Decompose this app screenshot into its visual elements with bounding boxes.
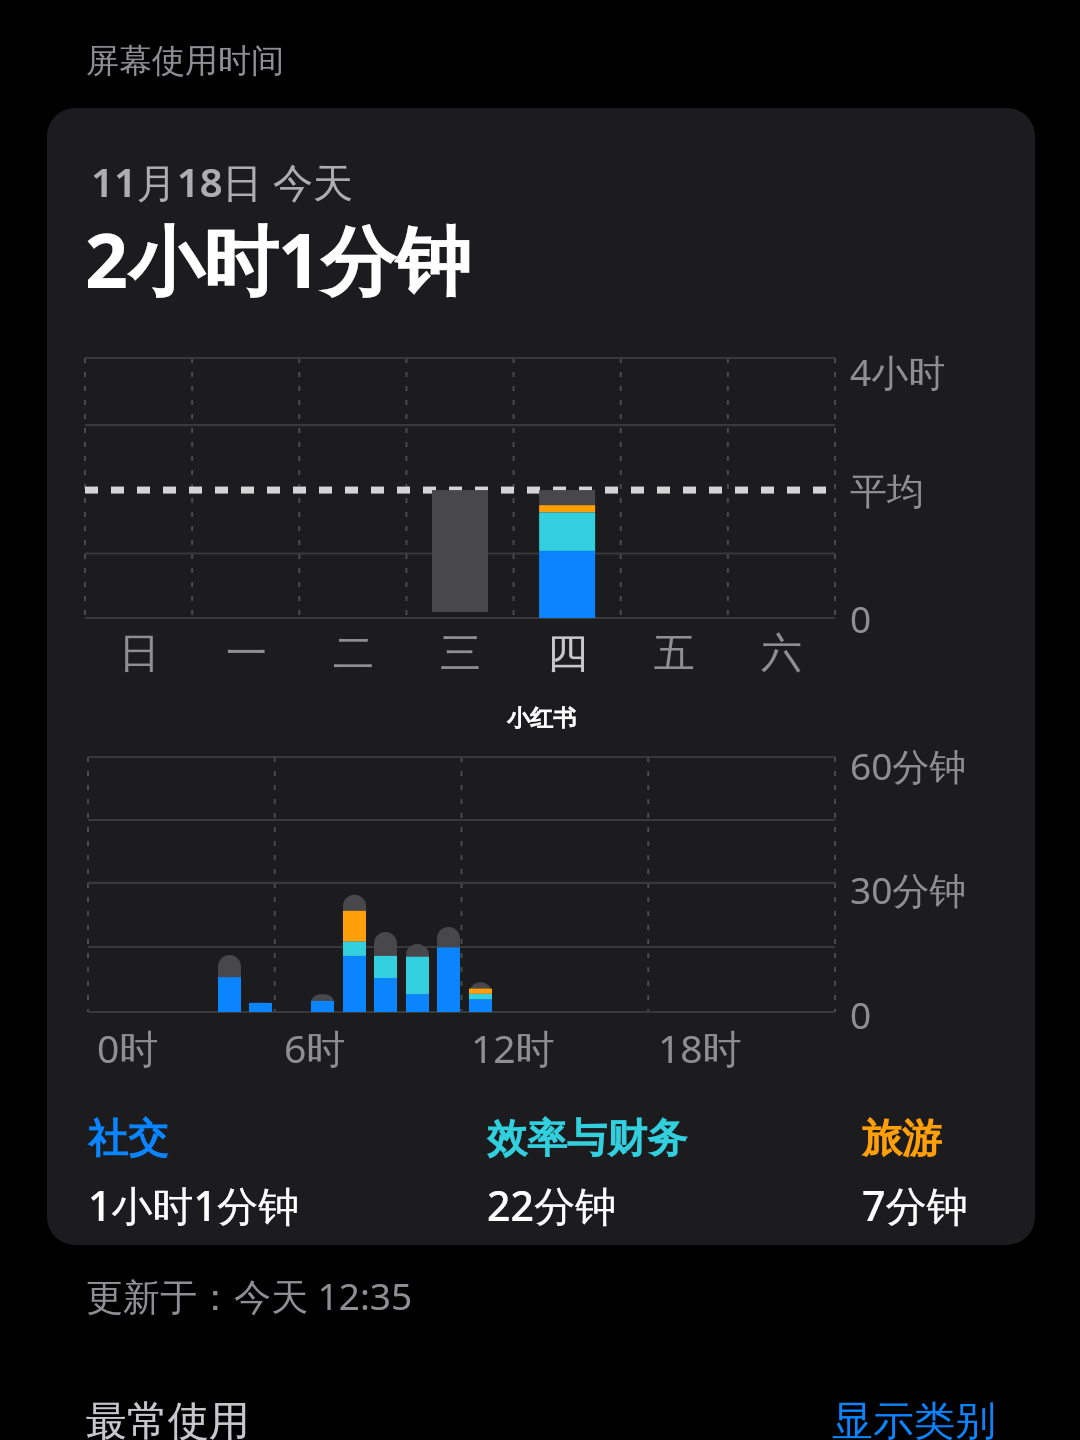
staticText: 屏幕使用时间 [86, 40, 284, 82]
staticText: 三 [440, 628, 481, 680]
button[interactable]: 显示类别 [832, 1396, 996, 1440]
staticText: 社交 [88, 1113, 168, 1163]
staticText: 更新于：今天 12:35 [86, 1270, 413, 1321]
staticText: 60分钟 [850, 740, 967, 791]
staticText: 11月18日 今天 [91, 154, 353, 209]
staticText: 7分钟 [862, 1177, 968, 1233]
staticText: 一 [226, 628, 267, 680]
button[interactable]: 旅游 [862, 1113, 968, 1233]
staticText: 30分钟 [850, 864, 967, 915]
staticText: 6时 [284, 1021, 346, 1074]
staticText: 4小时 [850, 346, 946, 397]
button[interactable]: 11月18日 今天 [47, 108, 1035, 1245]
staticText: 显示类别 [832, 1396, 996, 1440]
button[interactable]: 效率与财务 [487, 1113, 687, 1233]
staticText: 平均 [850, 468, 924, 515]
staticText: 18时 [658, 1021, 742, 1074]
staticText: 日 [119, 628, 160, 680]
staticText: 四 [547, 628, 588, 680]
staticText: 六 [761, 628, 802, 680]
staticText: 二 [333, 628, 374, 680]
staticText: 2小时1分钟 [85, 208, 471, 310]
staticText: 最常使用 [86, 1396, 250, 1440]
staticText: 五 [654, 628, 695, 680]
staticText: 0 [850, 989, 872, 1039]
staticText: 效率与财务 [487, 1113, 687, 1163]
staticText: 旅游 [862, 1113, 942, 1163]
staticText: 小红书 [507, 704, 576, 733]
button[interactable]: 最常使用 [86, 1396, 250, 1440]
staticText: 0时 [97, 1021, 159, 1074]
staticText: 22分钟 [487, 1177, 616, 1233]
staticText: 0 [850, 593, 872, 643]
staticText: 1小时1分钟 [88, 1177, 299, 1233]
button[interactable]: 社交 [88, 1113, 299, 1233]
staticText: 12时 [471, 1021, 555, 1074]
